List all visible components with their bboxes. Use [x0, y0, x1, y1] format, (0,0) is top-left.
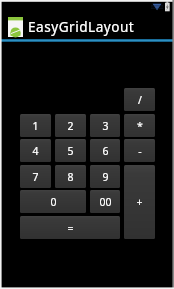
staticText: 4: [32, 144, 39, 158]
button[interactable]: 3: [90, 114, 120, 137]
staticText: 8: [67, 170, 74, 184]
staticText: 3: [102, 119, 109, 133]
button[interactable]: 1: [20, 114, 51, 137]
button[interactable]: +: [124, 165, 155, 239]
staticText: 6: [102, 144, 109, 158]
button[interactable]: 8: [55, 165, 86, 188]
staticText: 1: [32, 119, 39, 133]
staticText: *: [137, 119, 143, 133]
button[interactable]: 7: [20, 165, 51, 188]
button[interactable]: 00: [90, 190, 120, 213]
staticText: -: [138, 144, 142, 158]
button[interactable]: -: [124, 139, 155, 162]
button[interactable]: /: [124, 88, 155, 111]
staticText: =: [67, 221, 74, 235]
button[interactable]: 6: [90, 139, 120, 162]
staticText: /: [138, 93, 142, 107]
button[interactable]: 2: [55, 114, 86, 137]
staticText: 0: [50, 195, 57, 209]
button[interactable]: 0: [20, 190, 86, 213]
staticText: 9: [102, 170, 109, 184]
button[interactable]: =: [20, 216, 120, 239]
button[interactable]: *: [124, 114, 155, 137]
staticText: EasyGridLayout: [28, 17, 135, 36]
button[interactable]: 5: [55, 139, 86, 162]
staticText: 7: [32, 170, 39, 184]
staticText: +: [136, 195, 143, 209]
staticText: 5: [67, 144, 74, 158]
button[interactable]: 4: [20, 139, 51, 162]
staticText: 00: [99, 195, 112, 209]
button[interactable]: 9: [90, 165, 120, 188]
staticText: 2: [67, 119, 74, 133]
